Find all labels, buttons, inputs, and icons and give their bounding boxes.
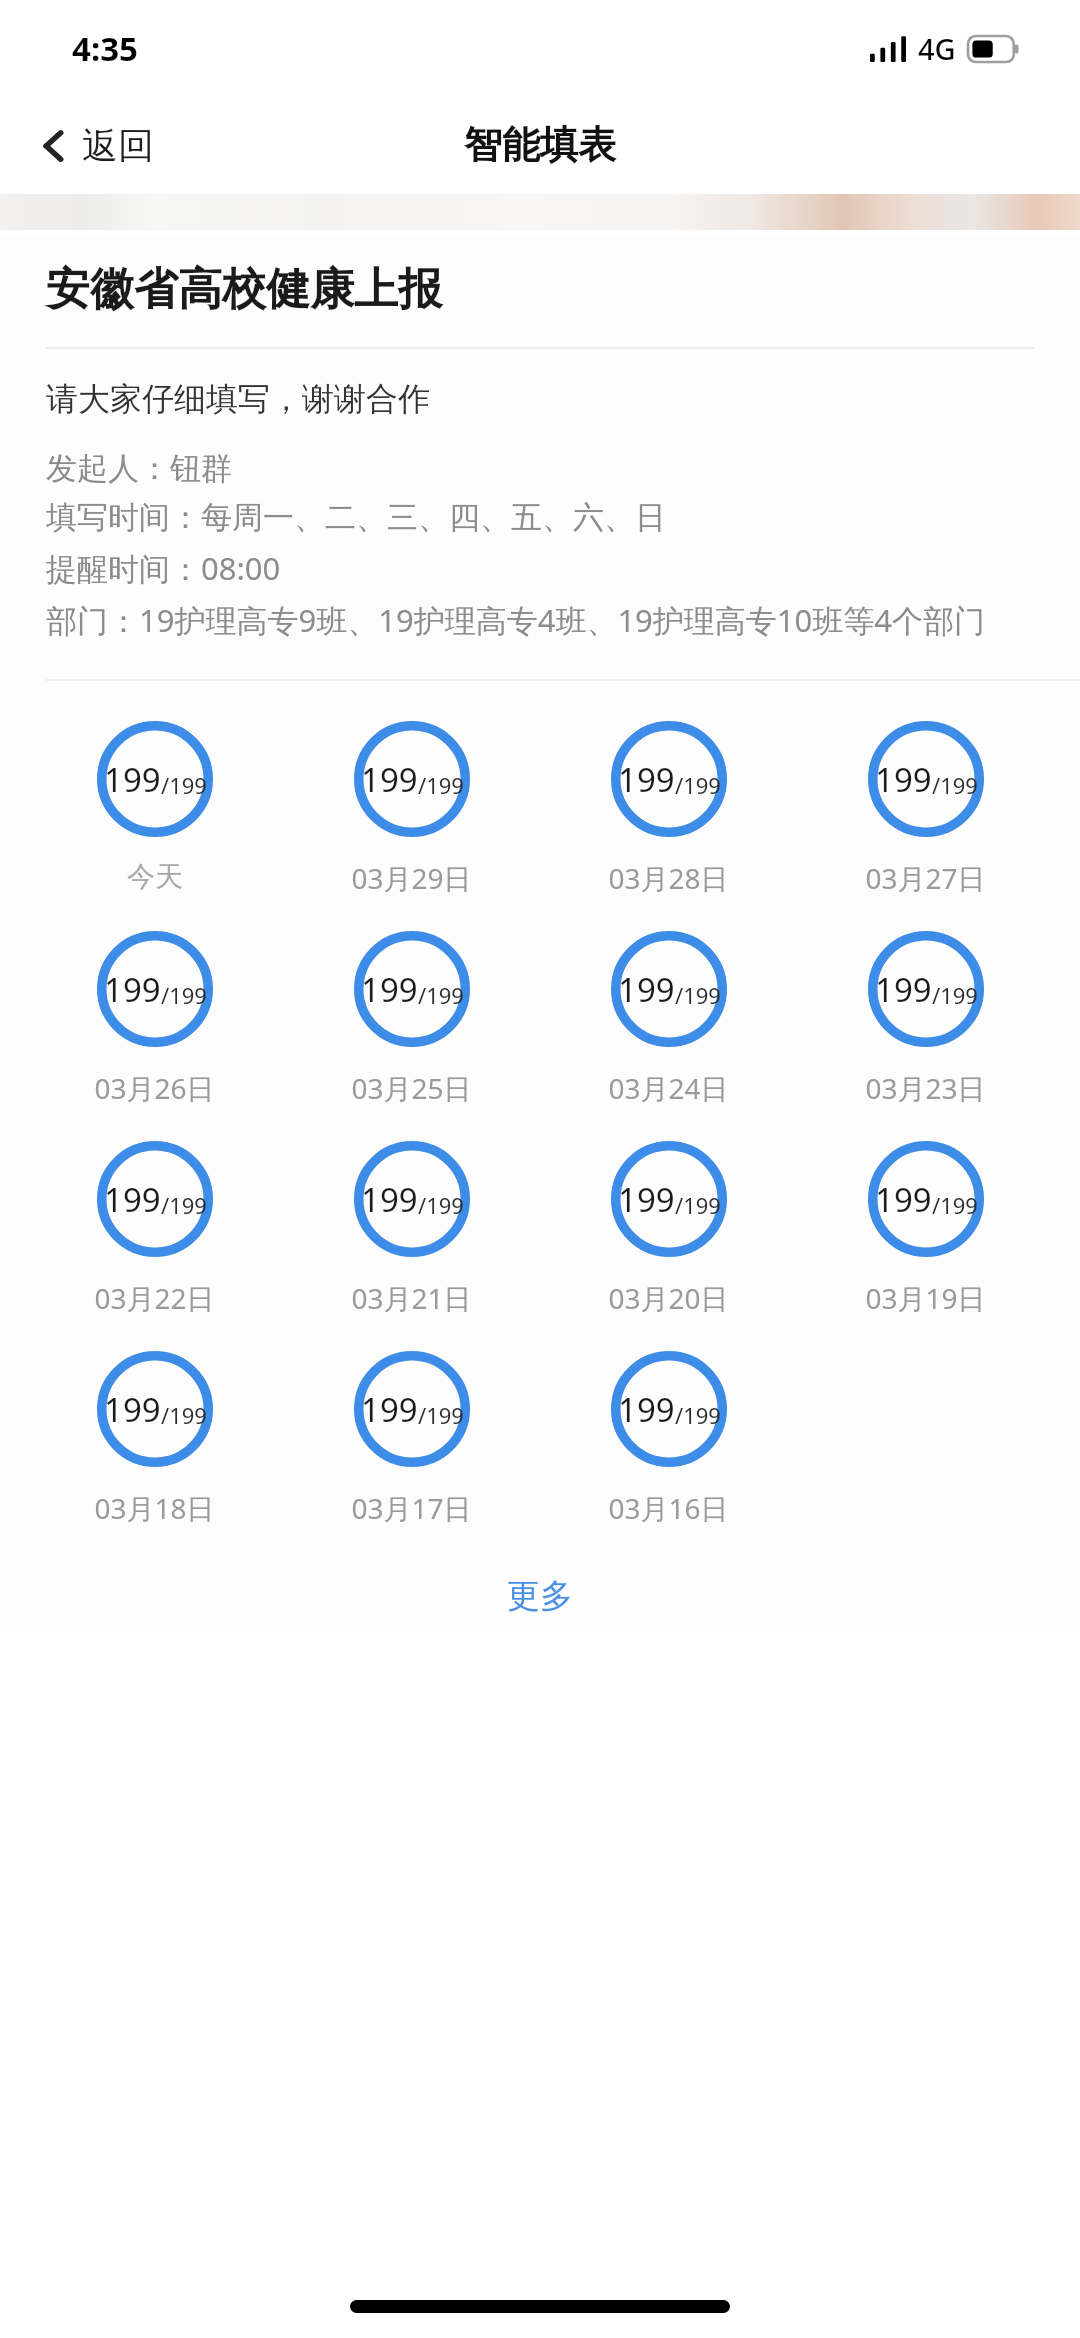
button[interactable]: 199: [283, 931, 540, 1107]
staticText: /199: [932, 770, 978, 800]
staticText: 03月23日: [865, 1069, 986, 1107]
staticText: 部门：19护理高专9班、19护理高专4班、19护理高专10班等4个部门: [46, 599, 986, 641]
staticText: /199: [418, 1190, 464, 1220]
staticText: 199: [104, 1387, 161, 1432]
button[interactable]: 199: [26, 721, 283, 894]
staticText: 03月24日: [608, 1069, 729, 1107]
staticText: 199: [361, 757, 418, 802]
staticText: 03月22日: [94, 1279, 215, 1317]
staticText: /199: [161, 1400, 207, 1430]
staticText: 智能填表: [464, 121, 616, 169]
staticText: 199: [875, 1177, 932, 1222]
staticText: 199: [104, 757, 161, 802]
staticText: 03月20日: [608, 1279, 729, 1317]
staticText: 199: [618, 757, 675, 802]
staticText: 03月27日: [865, 859, 986, 897]
staticText: /199: [161, 1190, 207, 1220]
button[interactable]: 199: [797, 931, 1054, 1107]
button[interactable]: 199: [797, 721, 1054, 897]
staticText: 4:35: [72, 26, 138, 71]
staticText: /199: [675, 770, 721, 800]
staticText: 03月28日: [608, 859, 729, 897]
staticText: 今天: [127, 859, 183, 894]
staticText: 199: [618, 1387, 675, 1432]
staticText: 199: [875, 757, 932, 802]
button[interactable]: 199: [540, 721, 797, 897]
staticText: 199: [618, 1177, 675, 1222]
staticText: /199: [418, 980, 464, 1010]
button[interactable]: 199: [26, 1351, 283, 1527]
staticText: 199: [361, 1387, 418, 1432]
staticText: /199: [932, 1190, 978, 1220]
staticText: 03月19日: [865, 1279, 986, 1317]
staticText: 03月17日: [351, 1489, 472, 1527]
button[interactable]: 返回: [34, 117, 162, 174]
button[interactable]: 199: [283, 1351, 540, 1527]
staticText: 03月25日: [351, 1069, 472, 1107]
staticText: /199: [675, 1400, 721, 1430]
staticText: 填写时间：每周一、二、三、四、五、六、日: [46, 498, 666, 537]
staticText: 199: [361, 1177, 418, 1222]
staticText: 03月16日: [608, 1489, 729, 1527]
button[interactable]: 199: [797, 1141, 1054, 1317]
staticText: /199: [675, 980, 721, 1010]
staticText: /199: [932, 980, 978, 1010]
staticText: /199: [161, 770, 207, 800]
staticText: 发起人：钮群: [46, 449, 232, 488]
staticText: 返回: [82, 123, 154, 168]
staticText: 199: [104, 967, 161, 1012]
staticText: 提醒时间：08:00: [46, 547, 281, 589]
staticText: /199: [418, 1400, 464, 1430]
staticText: /199: [418, 770, 464, 800]
button[interactable]: 199: [26, 931, 283, 1107]
button[interactable]: 199: [540, 1351, 797, 1527]
staticText: 199: [618, 967, 675, 1012]
staticText: 199: [104, 1177, 161, 1222]
staticText: 03月26日: [94, 1069, 215, 1107]
staticText: 更多: [507, 1575, 573, 1617]
staticText: 请大家仔细填写，谢谢合作: [46, 379, 430, 419]
staticText: 199: [875, 967, 932, 1012]
staticText: 199: [361, 967, 418, 1012]
staticText: 4G: [918, 29, 956, 68]
staticText: 03月21日: [351, 1279, 472, 1317]
staticText: 03月29日: [351, 859, 472, 897]
button[interactable]: 199: [540, 931, 797, 1107]
staticText: /199: [161, 980, 207, 1010]
staticText: 03月18日: [94, 1489, 215, 1527]
button[interactable]: 199: [26, 1141, 283, 1317]
button[interactable]: 199: [540, 1141, 797, 1317]
button[interactable]: 199: [283, 721, 540, 897]
button[interactable]: 更多: [0, 1561, 1080, 1631]
staticText: 安徽省高校健康上报: [46, 262, 442, 317]
staticText: /199: [675, 1190, 721, 1220]
button[interactable]: 199: [283, 1141, 540, 1317]
